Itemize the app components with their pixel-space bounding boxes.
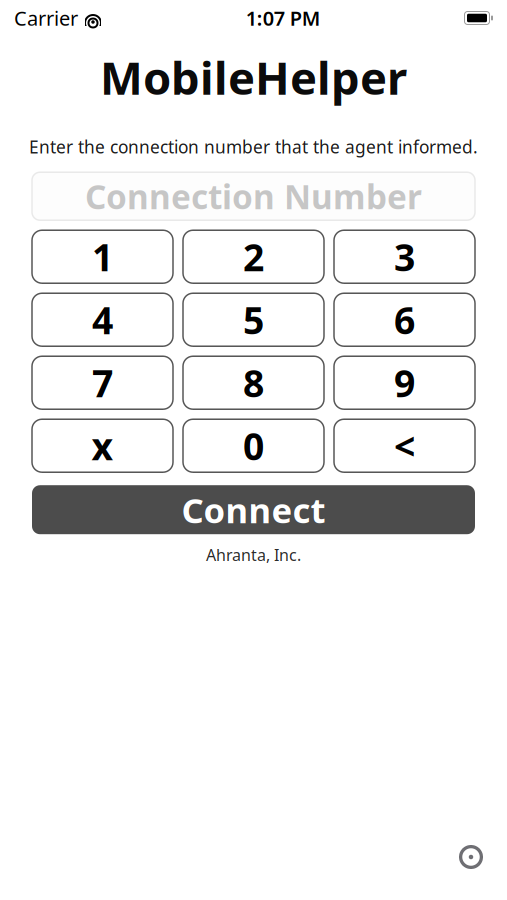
button[interactable]: 7	[32, 356, 173, 409]
button[interactable]: 0	[183, 419, 324, 472]
staticText: <	[394, 421, 415, 470]
staticText: 9	[394, 358, 415, 407]
staticText: Connect	[181, 487, 325, 533]
staticText: 8	[243, 358, 264, 407]
staticText: 1:07 PM	[246, 5, 321, 31]
staticText: 2	[243, 232, 264, 281]
staticText: 3	[394, 232, 415, 281]
staticText: x	[91, 421, 113, 470]
button[interactable]: 3	[334, 230, 475, 283]
button[interactable]: x	[32, 419, 173, 472]
staticText: Carrier	[14, 5, 78, 31]
button[interactable]: 2	[183, 230, 324, 283]
staticText: Enter the connection number that the age…	[29, 135, 478, 158]
staticText: Ahranta, Inc.	[206, 544, 301, 565]
button[interactable]: 5	[183, 293, 324, 346]
button[interactable]: 4	[32, 293, 173, 346]
button[interactable]: Connect	[32, 485, 475, 534]
button[interactable]: 8	[183, 356, 324, 409]
staticText: 7	[92, 358, 113, 407]
staticText: MobileHelper	[100, 47, 407, 107]
staticText: 5	[243, 295, 264, 344]
staticText: 1	[92, 232, 113, 281]
button[interactable]: 1	[32, 230, 173, 283]
staticText: 0	[243, 421, 264, 470]
button[interactable]: <	[334, 419, 475, 472]
staticText: Connection Number	[85, 174, 422, 218]
button[interactable]: 9	[334, 356, 475, 409]
button[interactable]: Settings	[451, 837, 491, 877]
staticText: 4	[92, 295, 113, 344]
staticText: 6	[394, 295, 415, 344]
button[interactable]: 6	[334, 293, 475, 346]
